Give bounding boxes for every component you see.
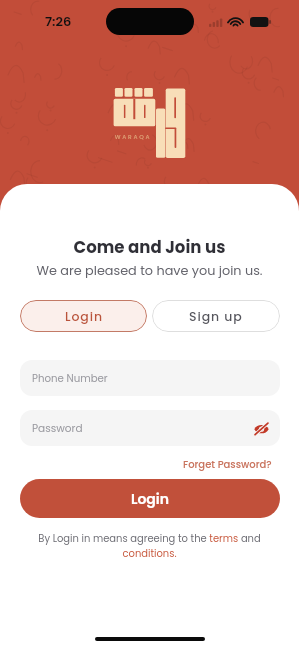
staticText: We are pleased to have you join us. — [0, 262, 299, 280]
button[interactable]: Login — [20, 300, 147, 332]
button[interactable]: Login — [20, 479, 280, 518]
staticText: Login — [65, 308, 103, 325]
staticText: Login — [131, 489, 169, 509]
button[interactable]: Password — [20, 410, 280, 446]
button[interactable]: Sign up — [152, 300, 280, 332]
staticText: By Login in means agreeing to the terms … — [28, 532, 271, 560]
staticText: WARAQA — [110, 133, 156, 141]
staticText: Sign up — [189, 308, 243, 325]
staticText: 7:26 — [45, 12, 72, 30]
button[interactable]: Forget Password? — [183, 457, 272, 471]
staticText: Password — [32, 421, 83, 436]
staticText: Come and Join us — [0, 236, 299, 259]
staticText: Phone Number — [32, 371, 108, 385]
button[interactable]: Phone Number — [20, 360, 280, 396]
button[interactable]: Show password — [250, 417, 272, 439]
